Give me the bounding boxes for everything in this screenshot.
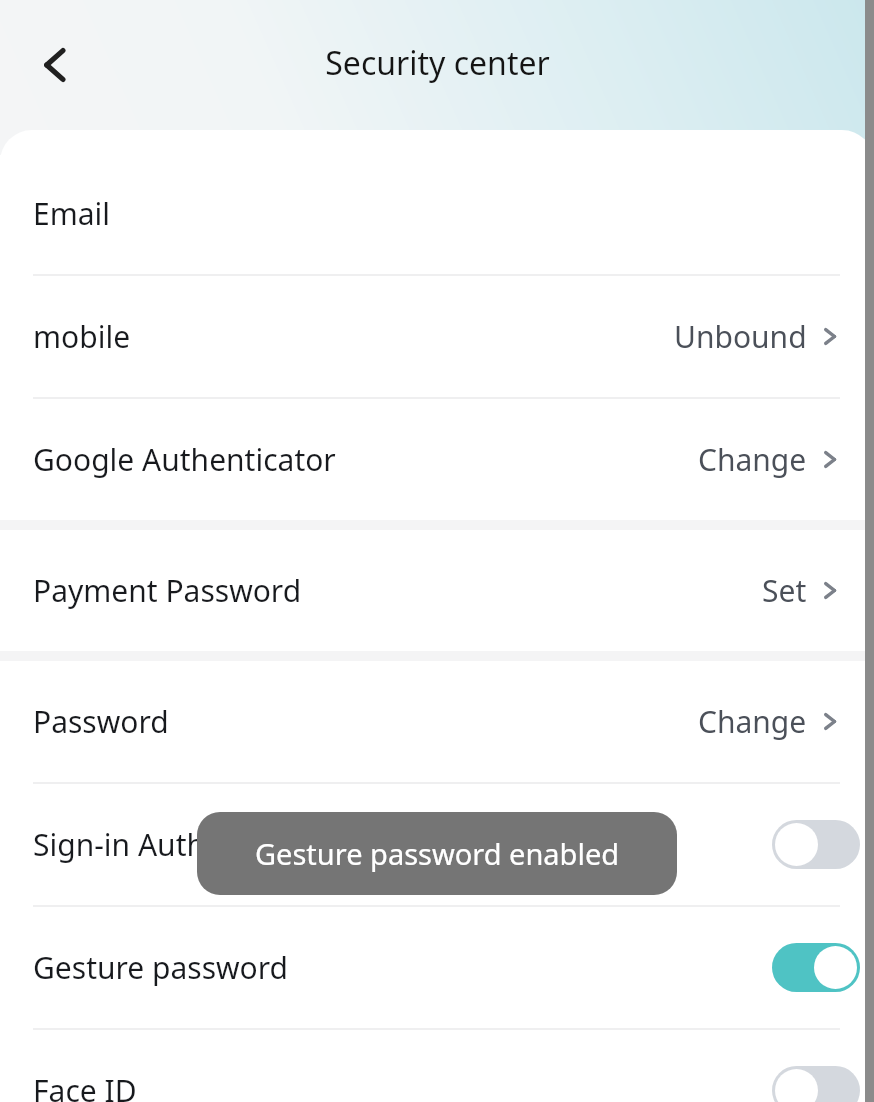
button[interactable]: Face ID — [772, 1066, 860, 1102]
button[interactable]: mobile — [0, 276, 874, 397]
button[interactable]: Password — [0, 661, 874, 782]
staticText: Gesture password enabled — [255, 834, 620, 873]
button[interactable]: Sign-in Authentication — [772, 820, 860, 869]
staticText: Face ID — [33, 1070, 137, 1102]
staticText: Change — [698, 439, 807, 480]
staticText: Sign-in Authentication — [33, 824, 346, 865]
button[interactable]: Payment Password — [0, 530, 874, 651]
staticText: Unbound — [674, 316, 807, 357]
staticText: Google Authenticator — [33, 439, 336, 480]
staticText: Email — [33, 193, 111, 234]
staticText: Gesture password — [33, 947, 288, 988]
button[interactable]: Email — [0, 153, 874, 274]
button[interactable]: Sign-in Authentication — [0, 784, 874, 905]
staticText: Security center — [325, 41, 550, 85]
staticText: Change — [698, 701, 807, 742]
button[interactable]: Gesture password — [772, 943, 860, 992]
staticText: Set — [762, 570, 807, 611]
staticText: Payment Password — [33, 570, 302, 611]
staticText: Password — [33, 701, 169, 742]
button[interactable]: Google Authenticator — [0, 399, 874, 520]
button[interactable]: Gesture password — [0, 907, 874, 1028]
staticText: mobile — [33, 316, 131, 357]
button[interactable]: Back — [23, 33, 87, 97]
button[interactable]: Face ID — [0, 1030, 874, 1102]
